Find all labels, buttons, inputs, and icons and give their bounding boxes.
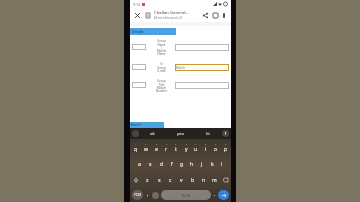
staticText: y [185, 146, 188, 153]
staticText: All text edits saved in D [154, 16, 183, 20]
staticText: हिं-EN [182, 193, 191, 198]
staticText: 3 [156, 143, 158, 146]
staticText: Details [132, 29, 144, 34]
staticText: ?123 [134, 193, 141, 197]
button[interactable]: you [166, 128, 194, 139]
staticText: 5 [175, 143, 177, 146]
staticText: Mobile [176, 66, 185, 70]
staticText: you [177, 131, 184, 136]
staticText: s [149, 161, 152, 168]
staticText: v [180, 177, 183, 184]
staticText: o [214, 146, 218, 153]
button[interactable]: Group Name / Mobile Name [130, 35, 231, 59]
button[interactable]: Voice input [222, 130, 229, 137]
button[interactable]: 0 [221, 139, 231, 156]
staticText: r [165, 146, 168, 153]
staticText: hi [206, 131, 210, 136]
button[interactable]: ok [139, 128, 166, 139]
button[interactable]: Enter [218, 190, 229, 200]
button[interactable]: Backspace [220, 172, 231, 188]
staticText: c [169, 177, 172, 184]
staticText: i [205, 146, 207, 153]
button[interactable]: Details [130, 28, 231, 35]
button[interactable]: k [207, 156, 217, 172]
staticText: n [202, 177, 206, 184]
button[interactable]: 8 [201, 139, 211, 156]
button[interactable]: 5 [171, 139, 181, 156]
staticText: 9 [215, 143, 217, 146]
button[interactable]: Close [133, 11, 142, 20]
staticText: u [194, 146, 198, 153]
button[interactable]: Challan General... [154, 10, 200, 20]
staticText: m [212, 177, 217, 184]
button[interactable]: m [209, 172, 220, 188]
staticText: q [134, 146, 138, 153]
button[interactable]: 9 [211, 139, 221, 156]
staticText: k [211, 161, 214, 168]
button[interactable]: b [187, 172, 198, 188]
staticText: p [224, 146, 228, 153]
staticText: j [201, 161, 203, 168]
button[interactable]: Save [210, 10, 220, 20]
button[interactable]: x [153, 172, 165, 188]
button[interactable]: z [141, 172, 153, 188]
button[interactable]: Share [200, 10, 210, 20]
button[interactable]: v [176, 172, 187, 188]
staticText: Group Name / Mobile Name [157, 39, 166, 55]
staticText: 9:14 [133, 2, 140, 7]
button[interactable]: g [177, 156, 187, 172]
button[interactable]: j [197, 156, 207, 172]
button[interactable]: हिं-EN [161, 190, 211, 200]
button[interactable]: 4 [161, 139, 171, 156]
button[interactable]: Gboard menu [132, 130, 139, 137]
button[interactable]: Document [143, 11, 152, 20]
button[interactable]: 2 [141, 139, 151, 156]
button[interactable]: 3 [151, 139, 161, 156]
staticText: Challan General... [154, 10, 190, 16]
button[interactable]: h [187, 156, 197, 172]
button[interactable]: a [134, 156, 145, 172]
staticText: 1 [135, 143, 137, 146]
staticText: Sr Group E-mail [157, 62, 166, 72]
button[interactable]: 6 [181, 139, 191, 156]
button[interactable]: s [145, 156, 156, 172]
button[interactable]: Sheet1 [130, 122, 164, 128]
staticText: Sheet1 [130, 123, 141, 127]
button[interactable]: l [217, 156, 227, 172]
staticText: 6 [186, 143, 188, 146]
button[interactable]: 7 [191, 139, 201, 156]
staticText: a [138, 161, 141, 168]
staticText: b [191, 177, 195, 184]
staticText: f [171, 161, 173, 168]
staticText: e [155, 146, 158, 153]
button[interactable]: Emoji [152, 192, 159, 199]
staticText: 8 [205, 143, 207, 146]
staticText: 7 [195, 143, 197, 146]
staticText: t [175, 146, 177, 153]
button[interactable]: n [198, 172, 209, 188]
button[interactable]: Sr Group E-mail [130, 59, 231, 75]
button[interactable]: Group Title Mobile Number [130, 75, 231, 95]
staticText: d [160, 161, 164, 168]
staticText: ok [150, 131, 155, 136]
staticText: 4 [166, 143, 168, 146]
button[interactable]: Period [213, 190, 216, 200]
button[interactable]: Shift [130, 172, 141, 188]
button[interactable]: 1 [130, 139, 141, 156]
staticText: w [144, 146, 148, 153]
button[interactable]: f [167, 156, 177, 172]
button[interactable]: d [156, 156, 167, 172]
staticText: h [190, 161, 194, 168]
button[interactable]: ?123 [132, 190, 143, 200]
button[interactable]: hi [194, 128, 222, 139]
button[interactable]: More options [220, 11, 228, 19]
staticText: g [180, 161, 184, 168]
button[interactable]: c [165, 172, 176, 188]
staticText: 2 [145, 143, 147, 146]
staticText: l [221, 161, 223, 168]
staticText: Group Title Mobile Number [156, 79, 167, 92]
staticText: z [146, 177, 149, 184]
staticText: x [158, 177, 161, 184]
button[interactable]: Settings [145, 190, 150, 200]
staticText: 0 [225, 143, 227, 146]
